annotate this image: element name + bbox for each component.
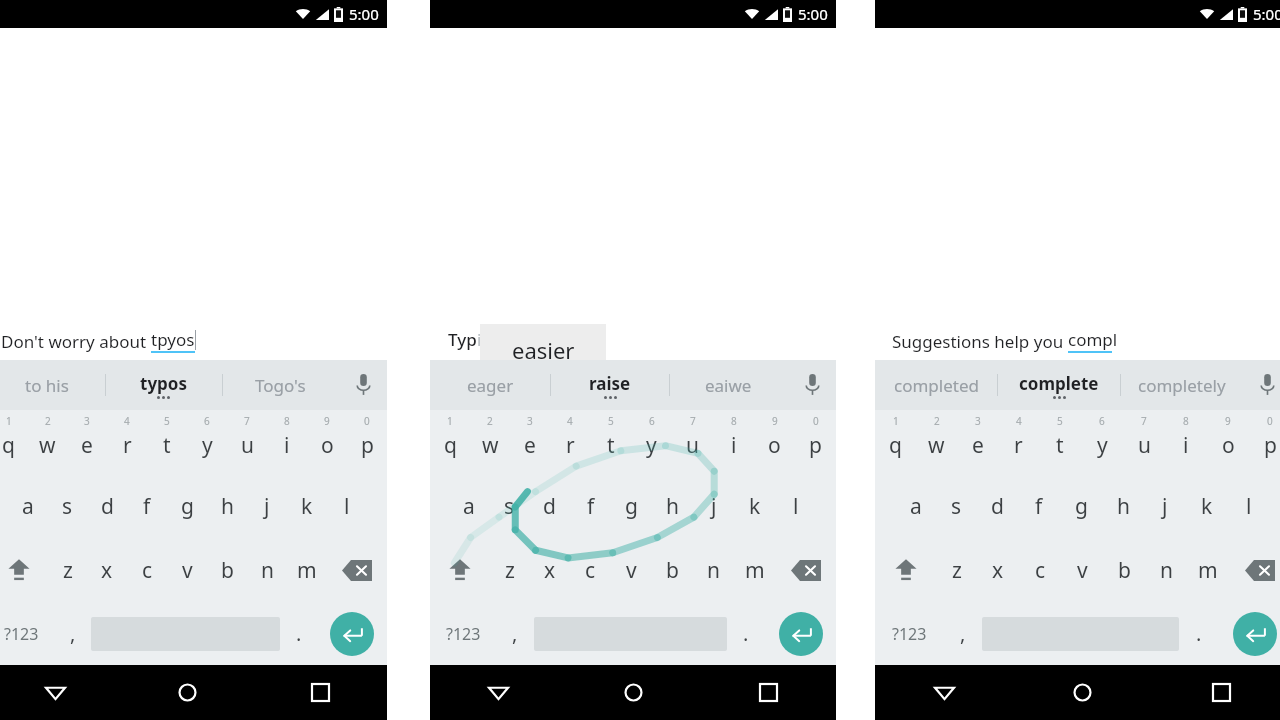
button[interactable]: eager xyxy=(430,360,550,410)
button[interactable]: , xyxy=(943,602,982,665)
button[interactable]: x xyxy=(977,538,1019,602)
button[interactable]: a xyxy=(8,474,47,538)
button[interactable]: 2 xyxy=(916,410,957,474)
button[interactable]: g xyxy=(1060,474,1102,538)
button[interactable]: 9 xyxy=(307,410,347,474)
button[interactable]: Home xyxy=(566,665,701,720)
button[interactable]: Home xyxy=(1013,665,1152,720)
button[interactable]: 7 xyxy=(227,410,267,474)
button[interactable]: n xyxy=(1145,538,1187,602)
button[interactable]: Voice input xyxy=(788,360,836,410)
button[interactable]: 0 xyxy=(1249,410,1280,474)
button[interactable]: 3 xyxy=(957,410,998,474)
button[interactable]: 2 xyxy=(470,410,510,474)
button[interactable]: , xyxy=(54,602,91,665)
button[interactable]: 2 xyxy=(28,410,67,474)
button[interactable]: Backspace xyxy=(775,538,836,602)
button[interactable]: 5 xyxy=(590,410,631,474)
button[interactable]: 1 xyxy=(430,410,470,474)
button[interactable]: eaiwe xyxy=(669,360,788,410)
button[interactable]: n xyxy=(247,538,287,602)
button[interactable]: . xyxy=(727,602,765,665)
button[interactable]: b xyxy=(207,538,247,602)
button[interactable]: 5 xyxy=(147,410,187,474)
button[interactable]: . xyxy=(1179,602,1218,665)
button[interactable]: s xyxy=(936,474,977,538)
button[interactable]: 6 xyxy=(187,410,227,474)
button[interactable]: f xyxy=(570,474,611,538)
button[interactable]: x xyxy=(87,538,127,602)
button[interactable]: 6 xyxy=(1081,410,1123,474)
button[interactable]: ?123 xyxy=(0,602,54,665)
button[interactable]: Recent apps xyxy=(1152,665,1280,720)
button[interactable]: Enter xyxy=(779,612,823,656)
button[interactable]: j xyxy=(693,474,734,538)
button[interactable]: s xyxy=(489,474,529,538)
button[interactable]: ?123 xyxy=(430,602,496,665)
button[interactable]: 8 xyxy=(1165,410,1207,474)
button[interactable]: 4 xyxy=(107,410,147,474)
button[interactable]: Back xyxy=(430,665,566,720)
button[interactable]: h xyxy=(652,474,693,538)
button[interactable]: 4 xyxy=(998,410,1039,474)
button[interactable]: 1 xyxy=(875,410,916,474)
button[interactable]: j xyxy=(1144,474,1186,538)
button[interactable]: v xyxy=(1061,538,1103,602)
button[interactable]: b xyxy=(652,538,693,602)
button[interactable]: g xyxy=(167,474,207,538)
button[interactable]: complete xyxy=(997,360,1120,410)
button[interactable]: m xyxy=(734,538,775,602)
button[interactable]: Togo's xyxy=(222,360,339,410)
button[interactable]: 1 xyxy=(0,410,28,474)
button[interactable]: Recent apps xyxy=(701,665,836,720)
button[interactable]: z xyxy=(48,538,87,602)
button[interactable]: 0 xyxy=(795,410,836,474)
button[interactable]: m xyxy=(1187,538,1229,602)
button[interactable]: c xyxy=(127,538,167,602)
button[interactable]: , xyxy=(496,602,534,665)
button[interactable]: typos xyxy=(105,360,222,410)
button[interactable]: l xyxy=(1228,474,1270,538)
button[interactable]: 9 xyxy=(754,410,795,474)
button[interactable]: Backspace xyxy=(1229,538,1280,602)
button[interactable]: a xyxy=(895,474,936,538)
button[interactable]: Shift xyxy=(875,538,936,602)
button[interactable]: h xyxy=(1102,474,1144,538)
button[interactable]: d xyxy=(529,474,570,538)
button[interactable]: 5 xyxy=(1039,410,1081,474)
button[interactable]: k xyxy=(1186,474,1228,538)
button[interactable]: c xyxy=(570,538,611,602)
button[interactable]: v xyxy=(611,538,652,602)
button[interactable]: l xyxy=(775,474,816,538)
button[interactable]: 9 xyxy=(1207,410,1249,474)
button[interactable]: completed xyxy=(875,360,997,410)
button[interactable]: Enter xyxy=(330,612,374,656)
button[interactable]: to his xyxy=(0,360,105,410)
button[interactable]: v xyxy=(167,538,207,602)
button[interactable]: x xyxy=(530,538,570,602)
button[interactable]: 6 xyxy=(631,410,672,474)
button[interactable]: z xyxy=(490,538,530,602)
button[interactable]: c xyxy=(1019,538,1061,602)
button[interactable]: 3 xyxy=(510,410,550,474)
button[interactable]: Home xyxy=(121,665,254,720)
button[interactable]: f xyxy=(1018,474,1060,538)
button[interactable]: 8 xyxy=(267,410,307,474)
button[interactable]: Backspace xyxy=(327,538,387,602)
button[interactable]: 3 xyxy=(67,410,107,474)
button[interactable]: Voice input xyxy=(339,360,387,410)
button[interactable]: Shift xyxy=(430,538,490,602)
button[interactable]: Recent apps xyxy=(254,665,387,720)
button[interactable]: s xyxy=(47,474,87,538)
button[interactable]: h xyxy=(207,474,247,538)
button[interactable]: 7 xyxy=(672,410,713,474)
button[interactable]: l xyxy=(327,474,367,538)
button[interactable]: 0 xyxy=(347,410,387,474)
button[interactable]: g xyxy=(611,474,652,538)
button[interactable]: b xyxy=(1103,538,1145,602)
button[interactable]: ?123 xyxy=(875,602,943,665)
button[interactable]: Enter xyxy=(1233,612,1277,656)
